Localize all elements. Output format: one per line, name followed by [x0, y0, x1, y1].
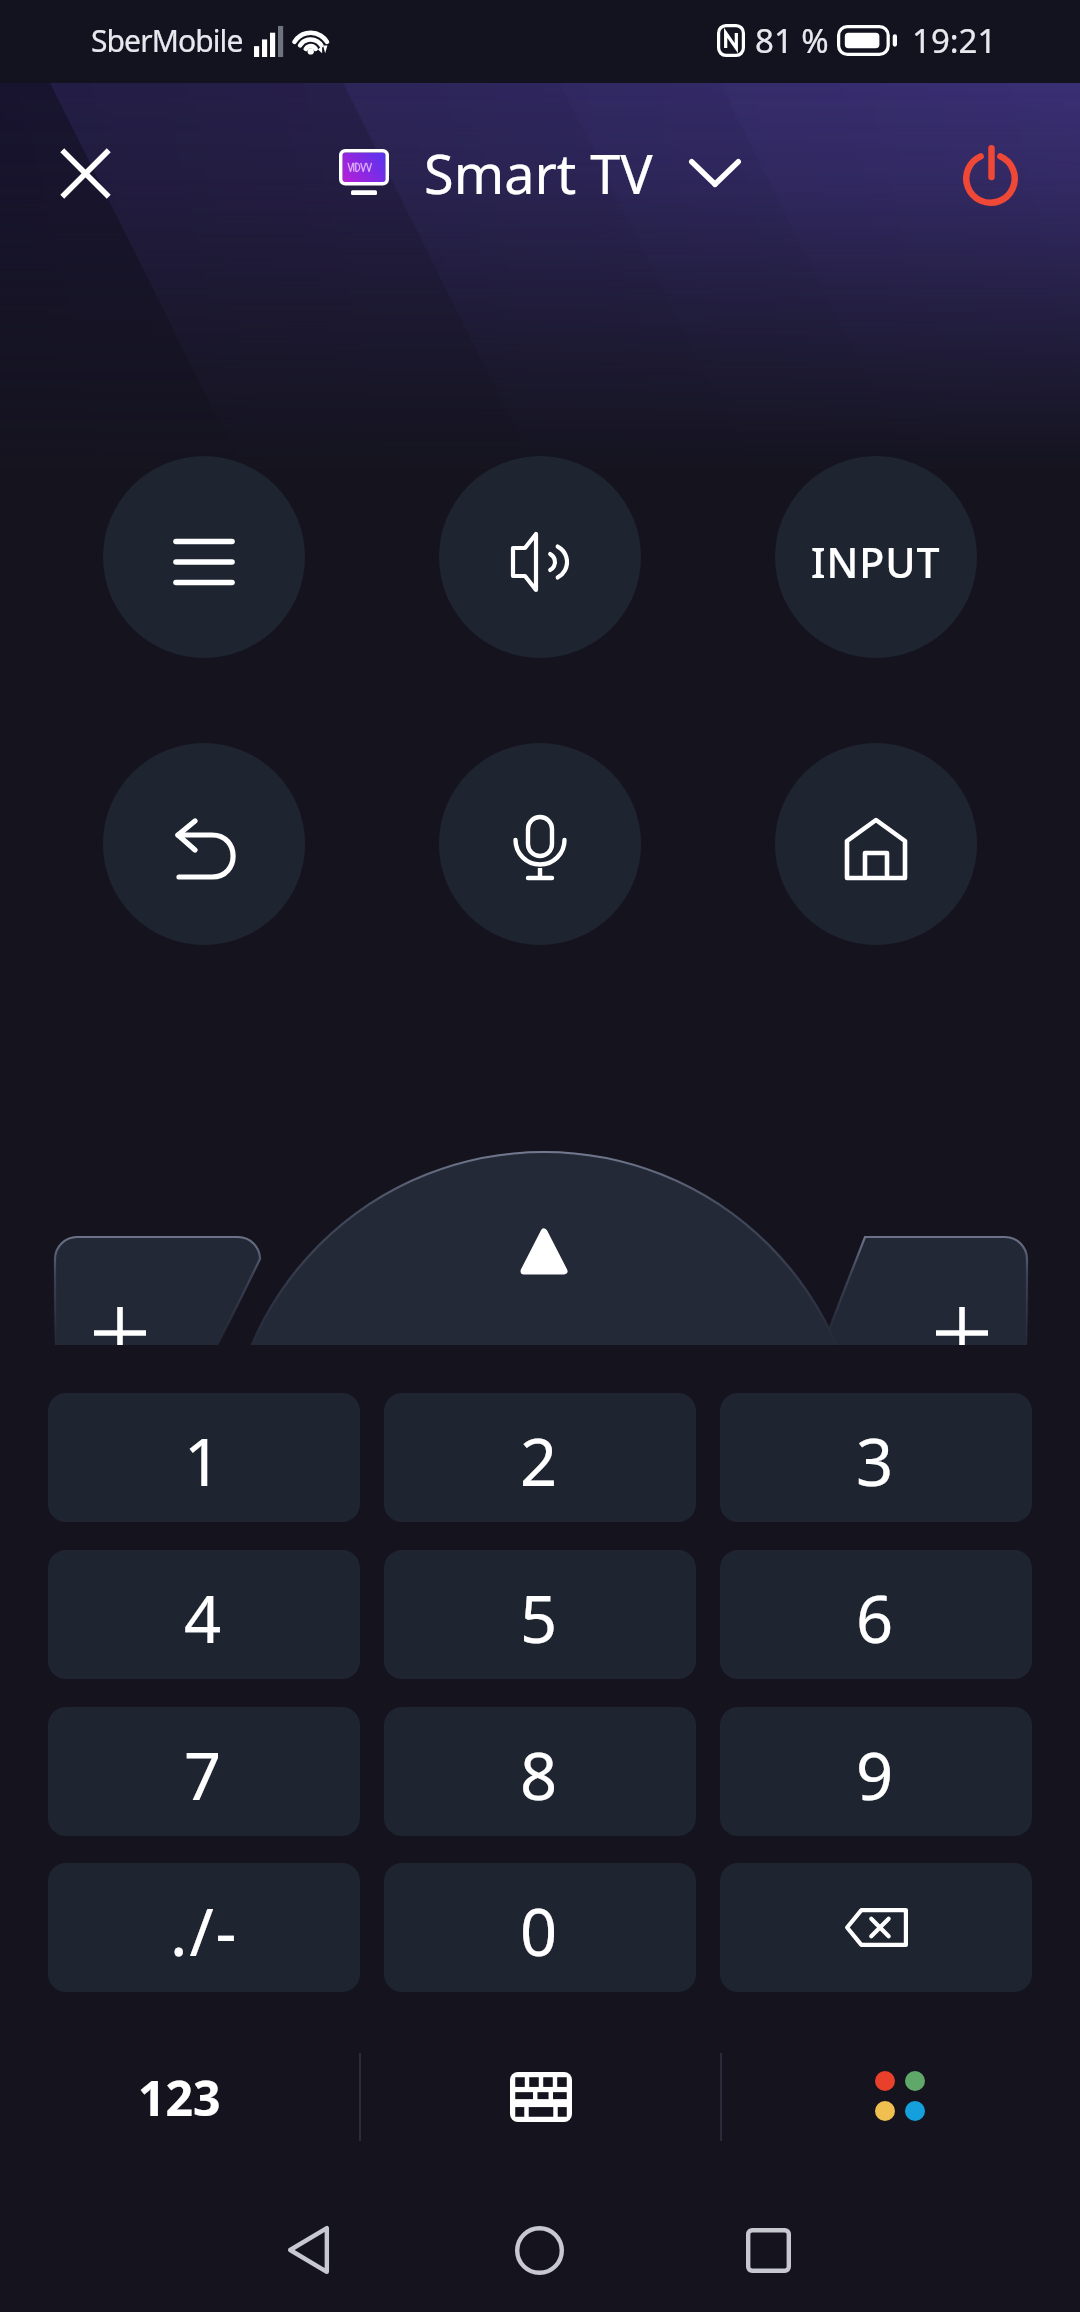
staticText: 81 %	[755, 18, 829, 63]
button[interactable]: 5	[384, 1550, 696, 1679]
button[interactable]: Back	[250, 2196, 366, 2304]
staticText: ./-	[170, 1887, 239, 1976]
button[interactable]: Home	[775, 743, 977, 945]
staticText: 5	[520, 1574, 560, 1663]
button[interactable]: Channel up	[822, 1237, 1027, 1345]
button[interactable]: Close	[39, 127, 131, 219]
button[interactable]	[720, 1863, 1032, 1992]
staticText: 9	[856, 1731, 896, 1820]
button[interactable]: 4	[48, 1550, 360, 1679]
button[interactable]: Power	[945, 129, 1037, 221]
button[interactable]: Home	[481, 2196, 597, 2304]
button[interactable]: 3	[720, 1393, 1032, 1522]
staticText: 8	[520, 1731, 560, 1820]
button[interactable]: 6	[720, 1550, 1032, 1679]
button[interactable]: ./-	[48, 1863, 360, 1992]
button[interactable]: 2	[384, 1393, 696, 1522]
button[interactable]: Up	[225, 1151, 863, 1345]
staticText: 6	[856, 1574, 896, 1663]
button[interactable]: Recents	[710, 2196, 826, 2304]
button[interactable]: Colour buttons	[722, 2041, 1080, 2153]
button[interactable]: 7	[48, 1707, 360, 1836]
staticText: INPUT	[811, 534, 941, 590]
button[interactable]: Back	[103, 743, 305, 945]
button[interactable]: INPUT	[775, 456, 977, 658]
staticText: 4	[184, 1574, 224, 1663]
staticText: 2	[520, 1417, 560, 1506]
button[interactable]: 8	[384, 1707, 696, 1836]
staticText: 123	[138, 2065, 221, 2130]
staticText: SberMobile	[91, 20, 243, 61]
button[interactable]: Voice	[439, 743, 641, 945]
button[interactable]: 1	[48, 1393, 360, 1522]
button[interactable]: Smart TV	[339, 136, 741, 210]
button[interactable]: 9	[720, 1707, 1032, 1836]
button[interactable]: Menu	[103, 456, 305, 658]
button[interactable]: 0	[384, 1863, 696, 1992]
staticText: 3	[856, 1417, 896, 1506]
staticText: 19:21	[912, 18, 997, 63]
button[interactable]: Volume	[439, 456, 641, 658]
staticText: 7	[184, 1731, 224, 1820]
button[interactable]: Keyboard	[361, 2041, 720, 2153]
button[interactable]: 123	[0, 2041, 359, 2153]
button[interactable]: Volume up	[55, 1237, 260, 1345]
staticText: Smart TV	[424, 136, 653, 210]
staticText: 0	[520, 1887, 560, 1976]
staticText: 1	[184, 1417, 224, 1506]
